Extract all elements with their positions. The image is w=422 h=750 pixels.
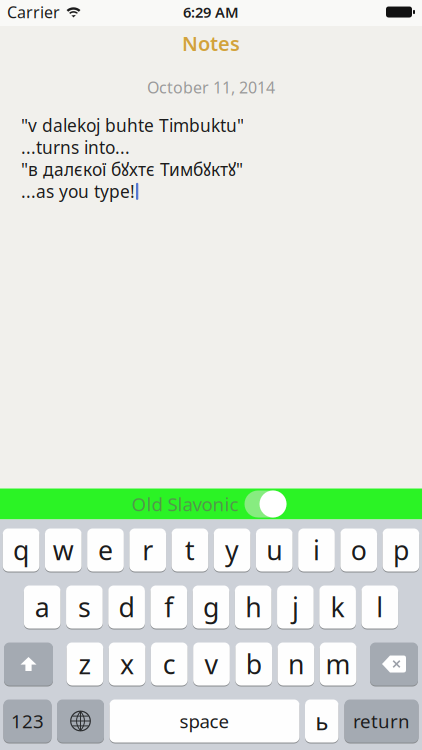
staticText: x <box>120 646 134 682</box>
staticText: space <box>179 709 229 733</box>
staticText: b <box>246 646 262 682</box>
staticText: Old Slavonic <box>131 492 238 516</box>
staticText: l <box>376 589 383 625</box>
staticText: ь <box>315 705 328 737</box>
button[interactable]: s <box>66 585 103 628</box>
staticText: r <box>142 532 153 568</box>
staticText: d <box>119 589 135 625</box>
button[interactable]: Old Slavonic <box>244 490 286 517</box>
staticText: m <box>326 646 351 682</box>
button[interactable]: e <box>87 528 124 571</box>
staticText: ...turns into... <box>21 136 130 159</box>
button[interactable]: Delete <box>370 642 418 685</box>
button[interactable]: l <box>361 585 398 628</box>
button[interactable]: Shift <box>4 642 53 685</box>
staticText: 123 <box>11 709 44 733</box>
staticText: "в далєкої бꙋхтє Тимбꙋктꙋ" <box>21 158 243 181</box>
button[interactable]: z <box>67 642 103 685</box>
staticText: h <box>245 589 261 625</box>
button[interactable]: b <box>235 642 272 685</box>
button[interactable]: space <box>109 699 299 742</box>
button[interactable]: Next keyboard <box>57 699 104 742</box>
staticText: return <box>353 709 410 733</box>
button[interactable]: w <box>45 528 82 571</box>
staticText: q <box>13 532 29 568</box>
button[interactable]: c <box>151 642 188 685</box>
staticText: f <box>164 589 173 625</box>
button[interactable]: h <box>235 585 272 628</box>
staticText: c <box>163 646 176 682</box>
button[interactable]: r <box>129 528 166 571</box>
staticText: t <box>185 532 195 568</box>
staticText: z <box>78 646 91 682</box>
button[interactable]: m <box>320 642 356 685</box>
button[interactable]: x <box>109 642 145 685</box>
button[interactable]: 123 <box>3 699 51 742</box>
staticText: w <box>53 532 74 568</box>
button[interactable]: j <box>277 585 314 628</box>
staticText: j <box>292 589 299 625</box>
button[interactable]: y <box>214 528 250 571</box>
staticText: October 11, 2014 <box>147 77 275 98</box>
staticText: a <box>35 589 50 625</box>
staticText: o <box>351 532 367 568</box>
button[interactable]: g <box>193 585 229 628</box>
staticText: g <box>203 589 219 625</box>
button[interactable]: o <box>340 528 377 571</box>
staticText: n <box>288 646 304 682</box>
button[interactable]: u <box>256 528 293 571</box>
button[interactable]: f <box>150 585 187 628</box>
button[interactable]: ь <box>305 699 338 742</box>
button[interactable]: p <box>382 528 419 571</box>
staticText: 6:29 AM <box>183 2 239 22</box>
staticText: i <box>313 532 320 568</box>
staticText: s <box>78 589 91 625</box>
staticText: e <box>98 532 113 568</box>
button[interactable]: return <box>344 699 418 742</box>
staticText: u <box>266 532 282 568</box>
staticText: p <box>393 532 409 568</box>
button[interactable]: v <box>193 642 230 685</box>
staticText: "v dalekoj buhte Timbuktu" <box>21 114 244 137</box>
button[interactable]: i <box>298 528 335 571</box>
button[interactable]: d <box>108 585 145 628</box>
button[interactable]: q <box>3 528 39 571</box>
staticText: v <box>204 646 218 682</box>
staticText: Carrier <box>7 1 60 23</box>
button[interactable]: k <box>319 585 356 628</box>
staticText: ...as you type! <box>21 180 135 203</box>
button[interactable]: t <box>172 528 208 571</box>
staticText: Notes <box>182 30 240 57</box>
button[interactable]: a <box>24 585 61 628</box>
staticText: k <box>331 589 345 625</box>
staticText: y <box>225 532 239 568</box>
button[interactable]: n <box>278 642 314 685</box>
